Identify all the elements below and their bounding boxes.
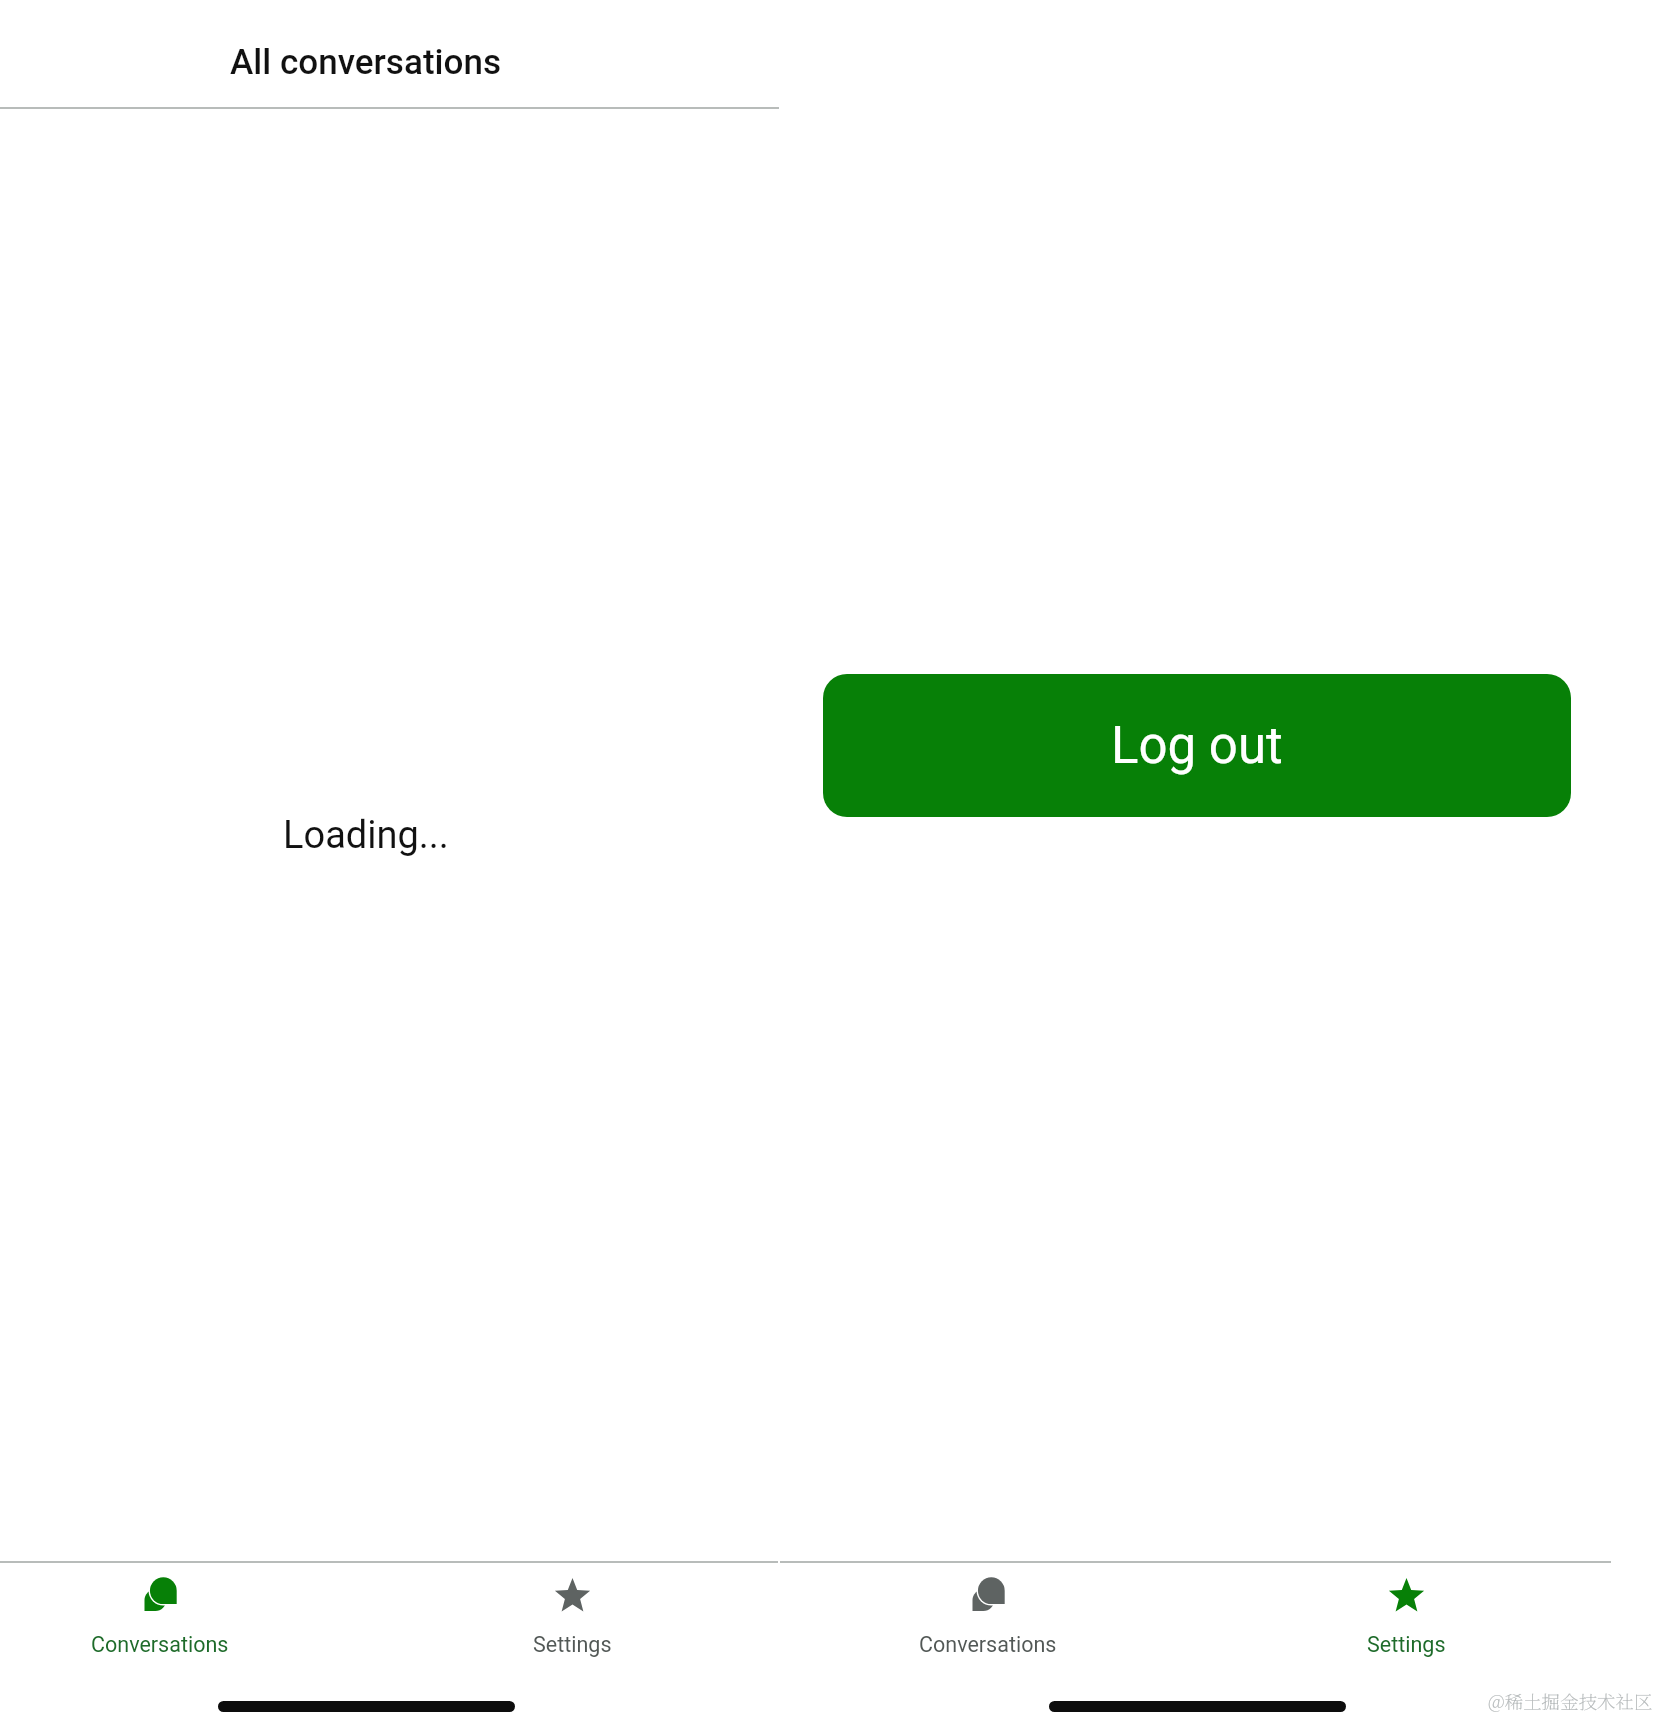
button[interactable]: Conversations (779, 1563, 1197, 1686)
staticText: @稀土掘金技术社区 (1488, 1688, 1653, 1715)
staticText: All conversations (230, 42, 501, 83)
button[interactable]: Conversations (0, 1563, 366, 1686)
staticText: Conversations (91, 1632, 229, 1657)
staticText: Settings (533, 1632, 612, 1657)
staticText: Conversations (919, 1632, 1057, 1657)
staticText: Log out (1111, 716, 1283, 776)
button[interactable]: Log out (823, 674, 1571, 817)
button[interactable]: Settings (366, 1563, 779, 1686)
staticText: Settings (1367, 1632, 1446, 1657)
staticText: Loading... (283, 813, 449, 858)
button[interactable]: Settings (1197, 1563, 1615, 1686)
